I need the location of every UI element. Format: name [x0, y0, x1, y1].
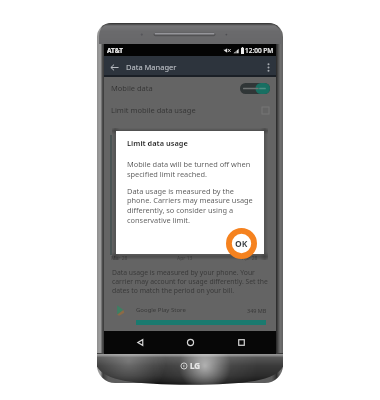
staticText: Mar 28 [111, 255, 128, 262]
button[interactable]: Limit mobile data usage [104, 99, 276, 121]
staticText: OK [235, 238, 248, 250]
button[interactable]: Mobile data [104, 77, 276, 99]
staticText: Data Manager [126, 62, 177, 72]
staticText: Mobile data will be turned off when spec… [127, 159, 257, 179]
staticText: 12:00 PM [245, 46, 274, 55]
button[interactable]: Navigate up [106, 59, 122, 75]
button[interactable]: Home [175, 331, 205, 354]
staticText: 349 MB [247, 307, 267, 314]
staticText: AT&T [107, 46, 123, 55]
staticText: Data usage is measured by the phone. Car… [127, 186, 257, 226]
staticText: Limit mobile data usage [111, 105, 196, 115]
button[interactable]: Google Play Store [104, 302, 276, 318]
staticText: Apr 28 [242, 255, 258, 262]
button[interactable]: More options [260, 59, 276, 75]
staticText: Data usage is measured by your phone. Yo… [112, 268, 272, 295]
button[interactable]: OK [226, 228, 257, 259]
staticText: Limit data usage [127, 138, 188, 148]
staticText: Apr 13 [177, 255, 193, 262]
button[interactable]: Back [125, 331, 155, 354]
staticText: LG [190, 360, 201, 371]
button[interactable]: Recent apps [226, 331, 256, 354]
staticText: Mobile data [111, 83, 153, 93]
staticText: Google Play Store [136, 306, 186, 314]
